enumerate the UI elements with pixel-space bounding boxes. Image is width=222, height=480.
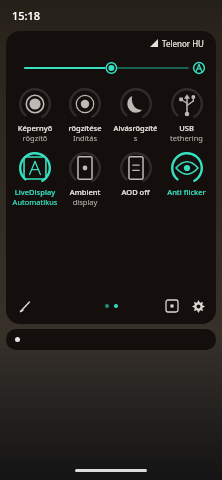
staticText: LiveDisplay bbox=[10, 187, 60, 197]
button[interactable]: Edit tiles bbox=[12, 293, 38, 319]
button[interactable]: USB bbox=[161, 88, 212, 143]
staticText: Indítás bbox=[60, 133, 110, 143]
button[interactable]: Settings bbox=[185, 293, 211, 319]
staticText: rögzítése bbox=[60, 123, 110, 133]
button[interactable]: LiveDisplay bbox=[10, 152, 60, 207]
staticText: Anti flicker bbox=[161, 187, 212, 197]
staticText: Ambient bbox=[60, 187, 110, 197]
staticText: Képernyő bbox=[10, 123, 60, 133]
button[interactable]: Power bbox=[159, 293, 185, 319]
staticText: Telenor HU bbox=[162, 38, 204, 49]
button[interactable]: AOD off bbox=[110, 152, 161, 197]
staticText: tethering bbox=[161, 133, 212, 143]
button[interactable]: Anti flicker bbox=[161, 152, 212, 197]
staticText: Automatikus bbox=[10, 197, 60, 207]
button[interactable] bbox=[6, 329, 216, 350]
staticText: s bbox=[110, 133, 161, 143]
staticText: Alvásrögzíté bbox=[110, 123, 161, 133]
button[interactable]: Alvásrögzíté bbox=[110, 88, 161, 143]
button[interactable]: Képernyő bbox=[10, 88, 60, 143]
staticText: AOD off bbox=[110, 187, 161, 197]
button[interactable]: rögzítése bbox=[60, 88, 110, 143]
button[interactable]: Ambient bbox=[60, 152, 110, 207]
staticText: USB bbox=[161, 123, 212, 133]
staticText: 15:18 bbox=[12, 8, 41, 23]
staticText: rögzítő bbox=[10, 133, 60, 143]
staticText: display bbox=[60, 197, 110, 207]
